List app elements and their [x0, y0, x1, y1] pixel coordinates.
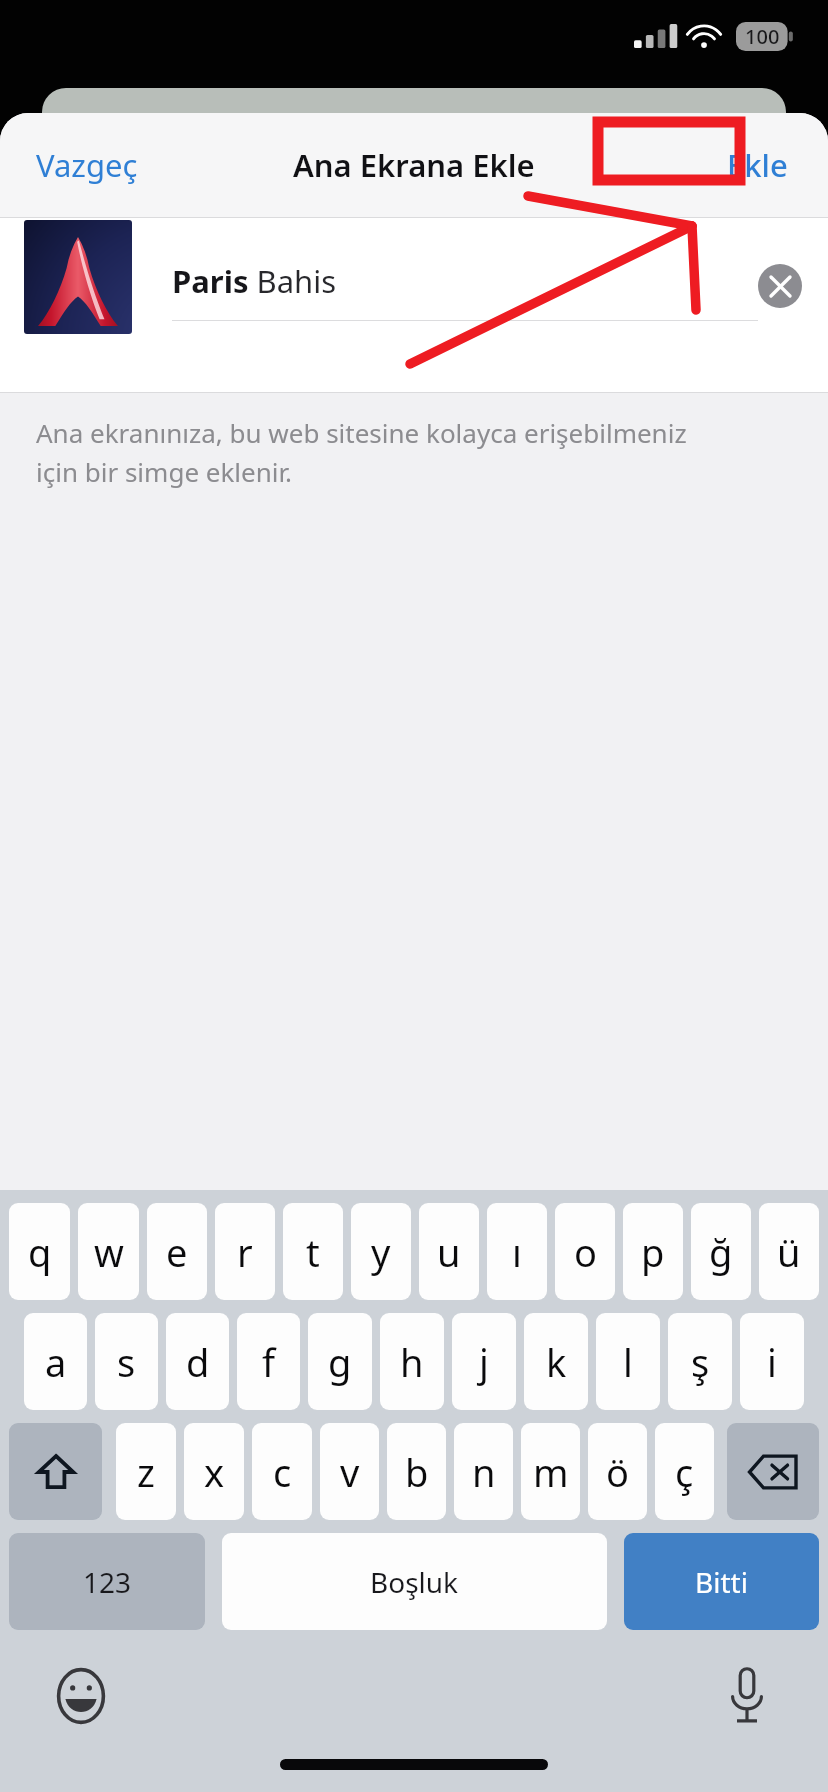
button[interactable]: ş	[668, 1313, 732, 1410]
button[interactable]: ğ	[691, 1203, 751, 1300]
button[interactable]: v	[320, 1423, 379, 1520]
button[interactable]: u	[419, 1203, 479, 1300]
staticText: Ana Ekrana Ekle	[293, 144, 535, 186]
staticText: y	[371, 1226, 391, 1278]
staticText: u	[437, 1226, 461, 1278]
staticText: l	[623, 1336, 633, 1388]
button[interactable]: Paris Bahis	[172, 260, 758, 302]
button[interactable]: Vazgeç	[20, 132, 154, 198]
staticText: w	[94, 1226, 124, 1278]
button[interactable]: a	[24, 1313, 87, 1410]
button[interactable]: i	[740, 1313, 804, 1410]
staticText: q	[28, 1226, 52, 1278]
staticText: x	[204, 1446, 225, 1498]
staticText: o	[574, 1226, 597, 1278]
staticText: g	[328, 1336, 352, 1388]
staticText: ş	[691, 1336, 710, 1388]
staticText: Boşluk	[370, 1563, 459, 1601]
button[interactable]: c	[252, 1423, 312, 1520]
button[interactable]: t	[283, 1203, 343, 1300]
staticText: ö	[606, 1446, 629, 1498]
staticText: i	[767, 1336, 777, 1388]
button[interactable]: n	[454, 1423, 513, 1520]
button[interactable]: b	[387, 1423, 446, 1520]
staticText: r	[237, 1226, 253, 1278]
staticText: f	[262, 1336, 276, 1388]
button[interactable]: m	[521, 1423, 580, 1520]
button[interactable]: o	[555, 1203, 615, 1300]
staticText: Vazgeç	[36, 144, 138, 186]
staticText: e	[166, 1226, 188, 1278]
staticText: ü	[777, 1226, 801, 1278]
button[interactable]: s	[95, 1313, 158, 1410]
staticText: Ana ekranınıza, bu web sitesine kolayca …	[36, 415, 718, 490]
staticText: a	[45, 1336, 67, 1388]
button[interactable]: Shift	[9, 1423, 102, 1520]
staticText: h	[400, 1336, 424, 1388]
staticText: c	[273, 1446, 292, 1498]
button[interactable]: p	[623, 1203, 683, 1300]
button[interactable]: z	[116, 1423, 176, 1520]
button[interactable]: Boşluk	[222, 1533, 607, 1630]
button[interactable]: ü	[759, 1203, 819, 1300]
button[interactable]: h	[380, 1313, 444, 1410]
button[interactable]: x	[184, 1423, 244, 1520]
button[interactable]: d	[166, 1313, 229, 1410]
button[interactable]: Ekle	[711, 132, 804, 198]
staticText: Bitti	[695, 1563, 748, 1601]
staticText: ğ	[709, 1226, 733, 1278]
staticText: Ekle	[727, 144, 788, 186]
button[interactable]: ı	[487, 1203, 547, 1300]
button[interactable]: f	[237, 1313, 300, 1410]
button[interactable]: l	[596, 1313, 660, 1410]
button[interactable]: r	[215, 1203, 275, 1300]
staticText: j	[479, 1336, 489, 1388]
button[interactable]: g	[308, 1313, 372, 1410]
staticText: ç	[675, 1446, 694, 1498]
button[interactable]: ö	[588, 1423, 647, 1520]
button[interactable]: Delete	[727, 1423, 819, 1520]
button[interactable]: y	[351, 1203, 411, 1300]
button[interactable]: k	[524, 1313, 588, 1410]
button[interactable]: q	[9, 1203, 70, 1300]
button[interactable]: j	[452, 1313, 516, 1410]
staticText: v	[340, 1446, 360, 1498]
staticText: ı	[512, 1226, 522, 1278]
staticText: k	[546, 1336, 567, 1388]
staticText: d	[186, 1336, 210, 1388]
staticText: n	[472, 1446, 496, 1498]
staticText: z	[137, 1446, 155, 1498]
staticText: s	[117, 1336, 136, 1388]
staticText: Paris Bahis	[172, 260, 337, 302]
button[interactable]: Clear text	[758, 264, 802, 308]
button[interactable]: e	[147, 1203, 207, 1300]
button[interactable]: Emoji keyboard	[48, 1663, 114, 1729]
staticText: b	[405, 1446, 429, 1498]
button[interactable]: ç	[655, 1423, 714, 1520]
button[interactable]: Bitti	[624, 1533, 819, 1630]
staticText: 123	[83, 1563, 132, 1601]
button[interactable]: Dictation	[714, 1663, 780, 1729]
button[interactable]: 123	[9, 1533, 205, 1630]
staticText: t	[306, 1226, 320, 1278]
staticText: p	[641, 1226, 665, 1278]
staticText: 100	[745, 23, 780, 50]
button[interactable]: w	[78, 1203, 139, 1300]
staticText: m	[533, 1446, 569, 1498]
